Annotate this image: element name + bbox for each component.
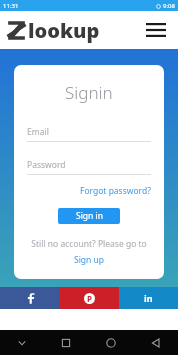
staticText: Still no account? Please go to <box>31 238 147 250</box>
staticText: Password <box>27 159 66 171</box>
staticText: Email <box>27 126 49 138</box>
staticText: Sign in <box>76 210 103 222</box>
staticText: in <box>144 292 153 304</box>
button[interactable]: Recent apps <box>44 330 88 355</box>
staticText: P <box>87 293 92 304</box>
button[interactable]: Hide keyboard <box>0 330 44 355</box>
button[interactable]: Share on LinkedIn <box>119 287 178 309</box>
button[interactable]: Open navigation menu <box>142 16 170 44</box>
staticText: Sign up <box>74 254 105 266</box>
button[interactable]: Email <box>27 126 151 142</box>
button[interactable]: Sign up <box>70 253 109 267</box>
button[interactable]: Share on Facebook <box>0 287 60 309</box>
button[interactable]: Back <box>133 330 178 355</box>
staticText: Forgot password? <box>80 185 151 197</box>
staticText: Signin <box>65 81 113 104</box>
staticText: lookup <box>28 17 100 44</box>
staticText: 11:31 <box>3 2 19 10</box>
button[interactable]: Home <box>88 330 133 355</box>
button[interactable]: Sign in <box>58 208 120 224</box>
staticText: 9:08 <box>163 2 175 10</box>
button[interactable]: Forgot password? <box>80 183 151 199</box>
button[interactable]: Password <box>27 159 151 175</box>
button[interactable]: Share on Pinterest <box>60 287 119 309</box>
